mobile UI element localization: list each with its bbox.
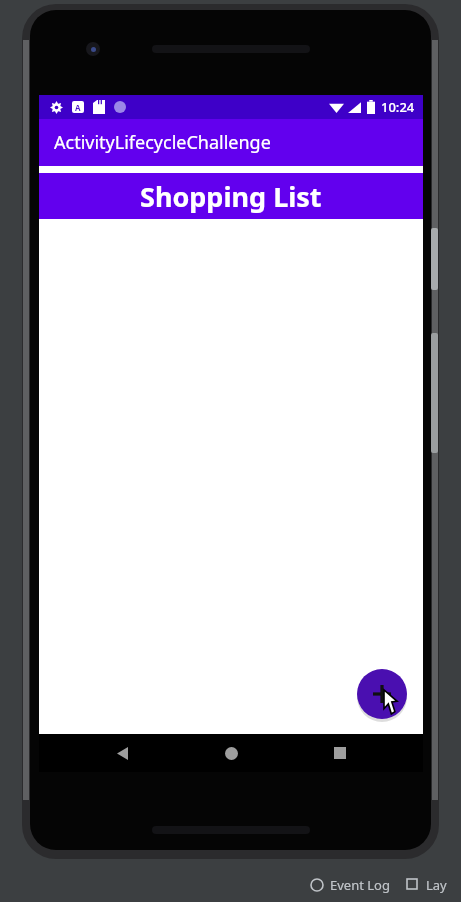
button[interactable]: Add item	[357, 669, 407, 719]
button[interactable]: Shopping List	[39, 173, 423, 219]
staticText: ActivityLifecycleChallenge	[54, 130, 271, 155]
button[interactable]: Home	[216, 738, 246, 768]
staticText: A	[75, 102, 81, 113]
button[interactable]: Back	[107, 738, 137, 768]
button[interactable]: Recent apps	[325, 738, 355, 768]
staticText: 10:24	[381, 98, 415, 116]
staticText: Event Log	[330, 876, 390, 894]
staticText: Lay	[426, 876, 447, 894]
staticText: Shopping List	[140, 178, 322, 215]
